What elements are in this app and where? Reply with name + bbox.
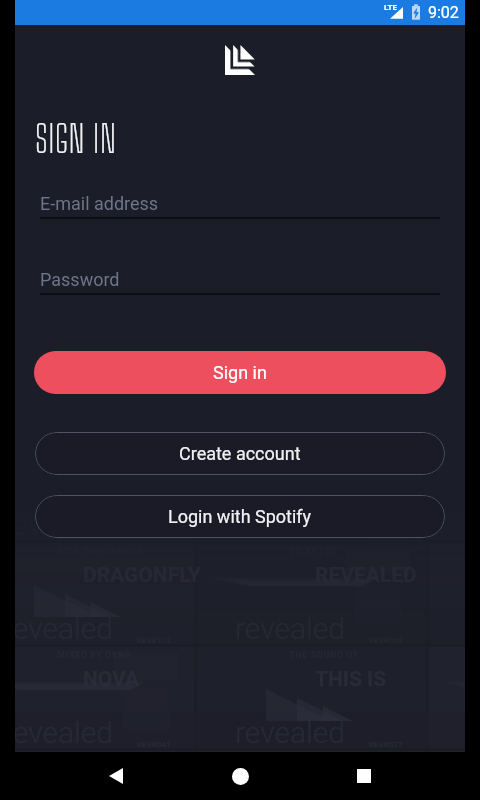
staticText: revealed	[15, 715, 113, 750]
staticText: E-mail address	[40, 193, 159, 214]
staticText: REVR041	[137, 740, 171, 749]
staticText: REVR112	[137, 636, 171, 645]
staticText: revealed	[235, 611, 345, 646]
staticText: THIS IS	[315, 667, 387, 692]
staticText: Create account	[179, 443, 301, 464]
staticText: REVRSP018	[137, 532, 181, 541]
staticText: THOMAS NEWSON	[315, 771, 465, 796]
button[interactable]: Recent apps	[341, 753, 387, 799]
staticText: REVR041	[137, 428, 171, 437]
staticText: BLASTERJAXX	[83, 459, 226, 484]
staticText: REVEALED	[315, 563, 417, 588]
button[interactable]: Create account	[35, 432, 445, 475]
staticText: LTE	[384, 3, 397, 12]
staticText: CHRIS & CARITA LA NINA	[289, 442, 408, 453]
staticText: REVR063	[369, 636, 403, 645]
staticText: revealed	[235, 715, 345, 750]
staticText: revealed	[15, 403, 113, 438]
staticText: revealed	[235, 403, 345, 438]
staticText: NOVA	[83, 667, 140, 692]
staticText: Login with Spotify	[168, 506, 312, 527]
staticText: Password	[40, 269, 120, 290]
staticText: revealed	[15, 507, 113, 542]
staticText: 9:02	[428, 3, 459, 22]
staticText: REVR077	[369, 428, 403, 437]
staticText: revealed	[235, 507, 345, 542]
staticText: DRAGONFLY	[83, 563, 201, 588]
staticText: Sign in	[213, 362, 267, 383]
staticText: REVR094	[369, 532, 403, 541]
button[interactable]: Sign in	[34, 351, 446, 394]
staticText: REVR077	[369, 740, 403, 749]
button[interactable]: Back	[93, 753, 139, 799]
staticText: SIGN IN	[35, 117, 117, 161]
staticText: BLASTERJAXX	[83, 771, 226, 796]
button[interactable]: Home	[217, 753, 263, 799]
staticText: revealed	[15, 611, 113, 646]
button[interactable]: Login with Spotify	[35, 495, 445, 538]
staticText: THOMAS NEWSON	[315, 459, 465, 484]
